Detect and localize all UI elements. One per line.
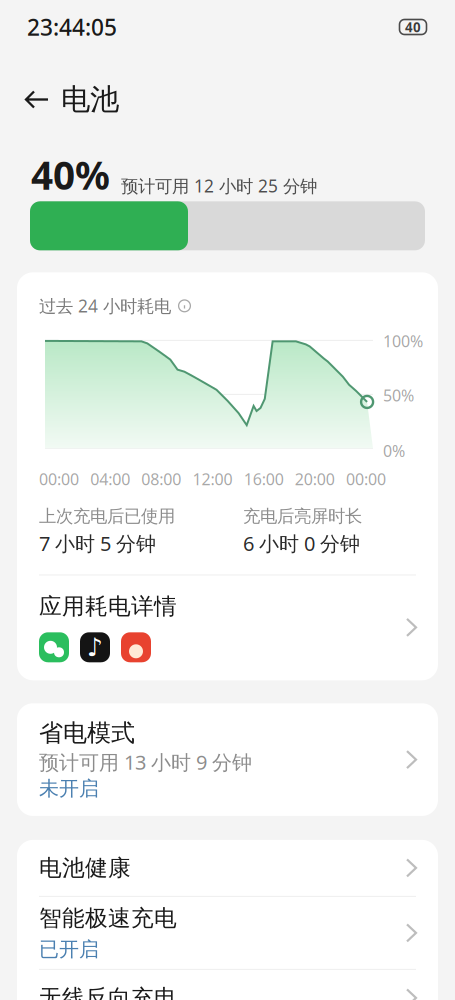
button[interactable]: 电池健康 (17, 854, 438, 882)
staticText: 00:00 (39, 468, 79, 490)
staticText: 上次充电后已使用 (39, 506, 175, 527)
staticText: 应用耗电详情 (39, 592, 177, 620)
button[interactable]: 无线反向充电 (17, 984, 438, 1000)
staticText: 智能极速充电 (39, 904, 177, 932)
button[interactable]: 智能极速充电 (17, 904, 438, 962)
staticText: 省电模式 (39, 718, 135, 748)
button[interactable]: 省电模式 (17, 703, 438, 816)
button[interactable]: Back (13, 76, 60, 123)
staticText: 40 (405, 18, 421, 36)
staticText: 预计可用 13 小时 9 分钟 (39, 749, 252, 775)
staticText: 40% (31, 149, 110, 200)
staticText: 充电后亮屏时长 (243, 506, 362, 527)
staticText: 6 小时 0 分钟 (243, 530, 360, 556)
staticText: 04:00 (90, 468, 130, 490)
staticText: 未开启 (39, 776, 99, 801)
staticText: 20:00 (295, 468, 335, 490)
staticText: 过去 24 小时耗电 (39, 294, 171, 317)
staticText: 预计可用 12 小时 25 分钟 (121, 174, 317, 197)
staticText: 23:44:05 (27, 12, 117, 42)
staticText: ♪ (87, 633, 103, 662)
staticText: 16:00 (244, 468, 284, 490)
staticText: 0% (383, 440, 405, 461)
button[interactable]: 应用耗电详情 (17, 575, 438, 680)
staticText: 08:00 (141, 468, 181, 490)
staticText: 7 小时 5 分钟 (39, 530, 156, 556)
staticText: 电池 (61, 81, 119, 117)
staticText: 50% (383, 385, 414, 406)
staticText: 12:00 (192, 468, 232, 490)
staticText: 电池健康 (39, 854, 131, 882)
staticText: 100% (383, 330, 423, 352)
staticText: 无线反向充电 (39, 984, 177, 1000)
staticText: 已开启 (39, 937, 99, 962)
staticText: 00:00 (346, 468, 386, 490)
